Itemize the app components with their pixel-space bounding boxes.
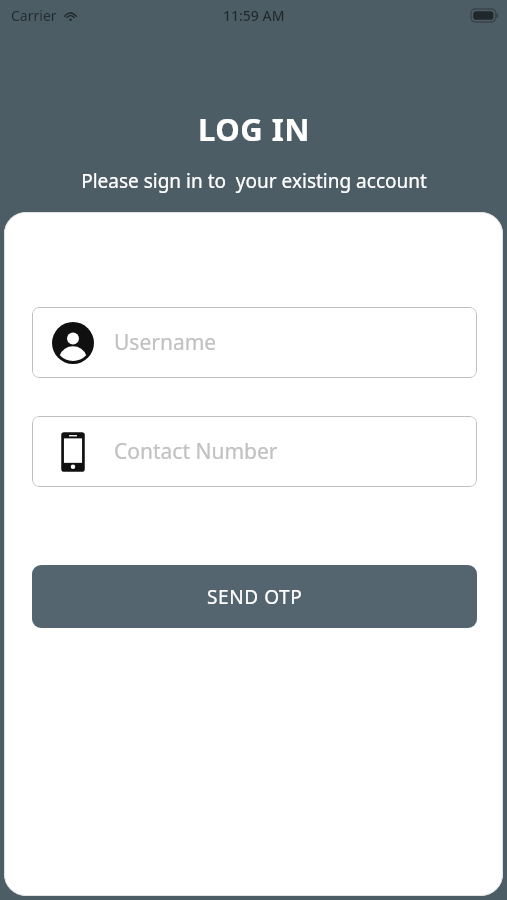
- staticText: Carrier: [11, 6, 57, 25]
- button[interactable]: SEND OTP: [32, 565, 477, 628]
- staticText: Please sign in to your existing account: [81, 168, 427, 194]
- staticText: SEND OTP: [207, 584, 303, 610]
- staticText: LOG IN: [198, 108, 310, 150]
- staticText: 11:59 AM: [223, 6, 285, 25]
- button[interactable]: Username: [32, 307, 477, 378]
- staticText: Contact Number: [114, 437, 278, 466]
- staticText: Username: [114, 328, 217, 357]
- button[interactable]: Contact Number: [32, 416, 477, 487]
